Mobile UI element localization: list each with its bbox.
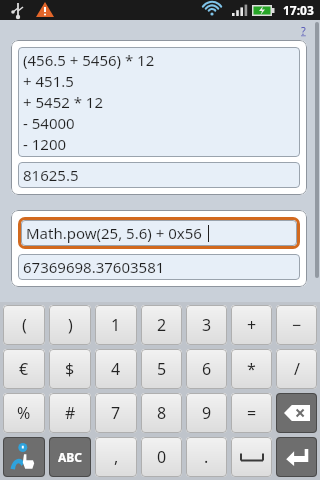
staticText: 2 — [157, 314, 167, 336]
button[interactable]: * — [231, 349, 272, 389]
staticText: 17:03 — [283, 2, 314, 18]
staticText: + 451.5 — [23, 71, 74, 91]
button[interactable]: Backspace — [276, 393, 317, 433]
staticText: 67369698.37603581 — [23, 257, 165, 277]
staticText: + — [247, 314, 257, 336]
staticText: = — [247, 402, 257, 424]
staticText: , — [114, 446, 119, 468]
staticText: 3 — [202, 314, 212, 336]
staticText: ABC — [58, 449, 82, 465]
button[interactable]: 7 — [95, 393, 137, 433]
button[interactable]: (456.5 + 5456) * 12 — [11, 40, 307, 195]
button[interactable]: / — [276, 349, 317, 389]
button[interactable]: − — [276, 305, 317, 345]
button[interactable]: , — [95, 437, 137, 477]
staticText: 6 — [202, 358, 212, 380]
button[interactable]: 2 — [141, 305, 182, 345]
button[interactable]: 67369698.37603581 — [23, 257, 295, 277]
button[interactable]: 0 — [141, 437, 182, 477]
button[interactable]: $ — [49, 349, 91, 389]
button[interactable]: . — [186, 437, 227, 477]
button[interactable]: ( — [3, 305, 45, 345]
staticText: 0 — [157, 446, 167, 468]
button[interactable]: 8 — [141, 393, 182, 433]
staticText: - 1200 — [23, 134, 67, 154]
staticText: ( — [22, 314, 27, 336]
staticText: 4 — [111, 358, 121, 380]
button[interactable]: ABC — [49, 437, 91, 477]
button[interactable]: 1 — [95, 305, 137, 345]
button[interactable]: 5 — [141, 349, 182, 389]
staticText: * — [247, 358, 256, 380]
staticText: Math.pow(25, 5.6) + 0x56 — [26, 223, 202, 243]
button[interactable]: Math.pow(25, 5.6) + 0x56 — [11, 210, 307, 287]
staticText: # — [65, 402, 76, 424]
staticText: . — [204, 446, 209, 468]
staticText: 5 — [157, 358, 167, 380]
staticText: € — [19, 358, 29, 380]
staticText: - 54000 — [23, 113, 75, 133]
staticText: 8 — [157, 402, 167, 424]
button[interactable]: 3 — [186, 305, 227, 345]
button[interactable]: Space — [231, 437, 272, 477]
button[interactable]: + — [231, 305, 272, 345]
staticText: − — [292, 314, 302, 336]
button[interactable]: Swipe input — [3, 437, 45, 477]
button[interactable]: % — [3, 393, 45, 433]
button[interactable]: = — [231, 393, 272, 433]
staticText: 1 — [111, 314, 121, 336]
button[interactable]: 81625.5 — [23, 165, 295, 185]
staticText: 9 — [202, 402, 212, 424]
button[interactable]: 9 — [186, 393, 227, 433]
button[interactable]: # — [49, 393, 91, 433]
button[interactable]: ? — [301, 23, 306, 38]
staticText: 7 — [111, 402, 121, 424]
staticText: (456.5 + 5456) * 12 — [23, 50, 155, 70]
staticText: 81625.5 — [23, 165, 79, 185]
staticText: % — [17, 402, 31, 424]
button[interactable]: € — [3, 349, 45, 389]
staticText: $ — [65, 358, 75, 380]
button[interactable]: 4 — [95, 349, 137, 389]
staticText: / — [294, 358, 300, 380]
staticText: ) — [68, 314, 73, 336]
button[interactable]: 6 — [186, 349, 227, 389]
button[interactable]: Enter — [276, 437, 317, 477]
staticText: + 5452 * 12 — [23, 92, 104, 112]
button[interactable]: ) — [49, 305, 91, 345]
